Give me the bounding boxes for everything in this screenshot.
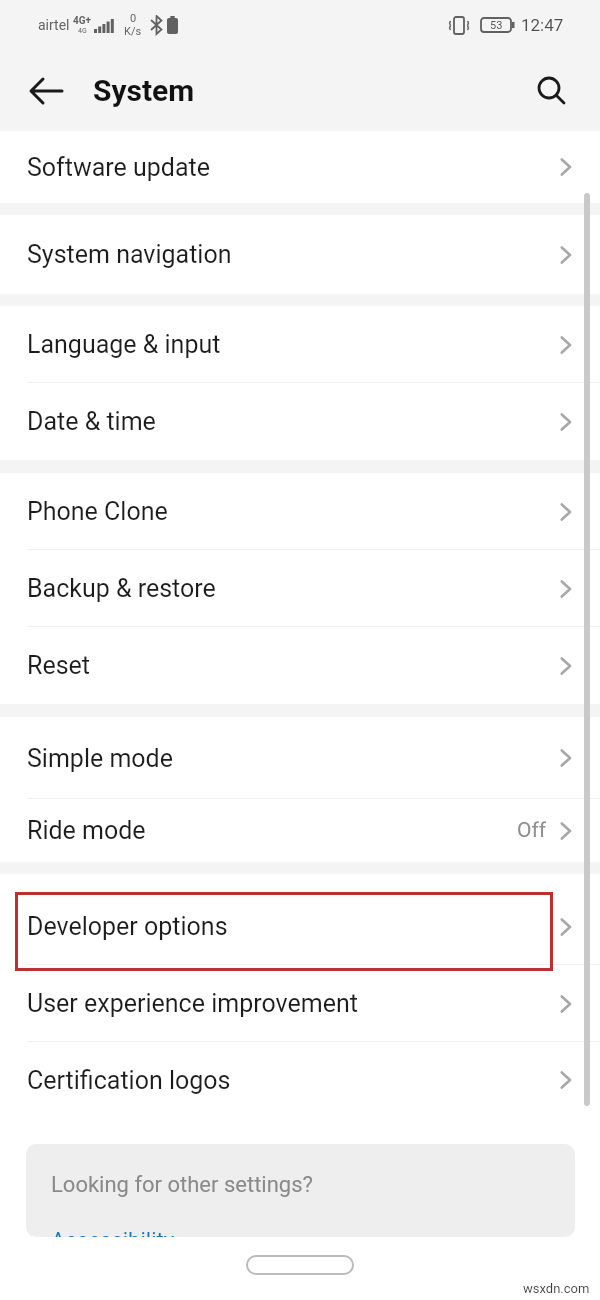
button[interactable]: Reset: [0, 627, 600, 704]
button[interactable]: Language & input: [0, 306, 600, 383]
button[interactable]: Phone Clone: [0, 473, 600, 550]
staticText: Date & time: [27, 407, 156, 436]
button[interactable]: [24, 69, 68, 113]
button[interactable]: Date & time: [0, 383, 600, 460]
staticText: Backup & restore: [27, 574, 216, 603]
staticText: K/s: [124, 25, 142, 38]
button[interactable]: Backup & restore: [0, 550, 600, 627]
staticText: Off: [517, 818, 547, 843]
staticText: System: [93, 73, 195, 108]
staticText: Ride mode: [27, 816, 146, 845]
button[interactable]: User experience improvement: [0, 965, 600, 1042]
staticText: wsxdn.com: [523, 1281, 590, 1296]
staticText: Developer options: [27, 912, 228, 941]
staticText: Software update: [27, 153, 211, 182]
staticText: Simple mode: [27, 744, 173, 773]
button[interactable]: Ride mode: [0, 799, 600, 862]
staticText: System navigation: [27, 240, 232, 269]
button[interactable]: Certification logos: [0, 1042, 600, 1118]
staticText: Looking for other settings?: [51, 1172, 313, 1198]
staticText: airtel: [38, 17, 70, 33]
staticText: 4G: [78, 27, 87, 35]
button[interactable]: System navigation: [0, 215, 600, 294]
button[interactable]: Looking for other settings?: [26, 1144, 575, 1237]
button[interactable]: Software update: [0, 131, 600, 203]
button[interactable]: [530, 69, 574, 113]
staticText: 0: [130, 12, 137, 25]
button[interactable]: Simple mode: [0, 717, 600, 799]
staticText: Reset: [27, 651, 91, 680]
staticText: 4G+: [73, 15, 92, 27]
staticText: User experience improvement: [27, 989, 358, 1018]
button[interactable]: Developer options: [0, 888, 600, 965]
staticText: 53: [490, 19, 503, 32]
staticText: 12:47: [521, 15, 564, 35]
staticText: Language & input: [27, 330, 221, 359]
staticText: Phone Clone: [27, 497, 168, 526]
staticText: Accessibility: [51, 1228, 175, 1237]
staticText: Certification logos: [27, 1066, 231, 1095]
